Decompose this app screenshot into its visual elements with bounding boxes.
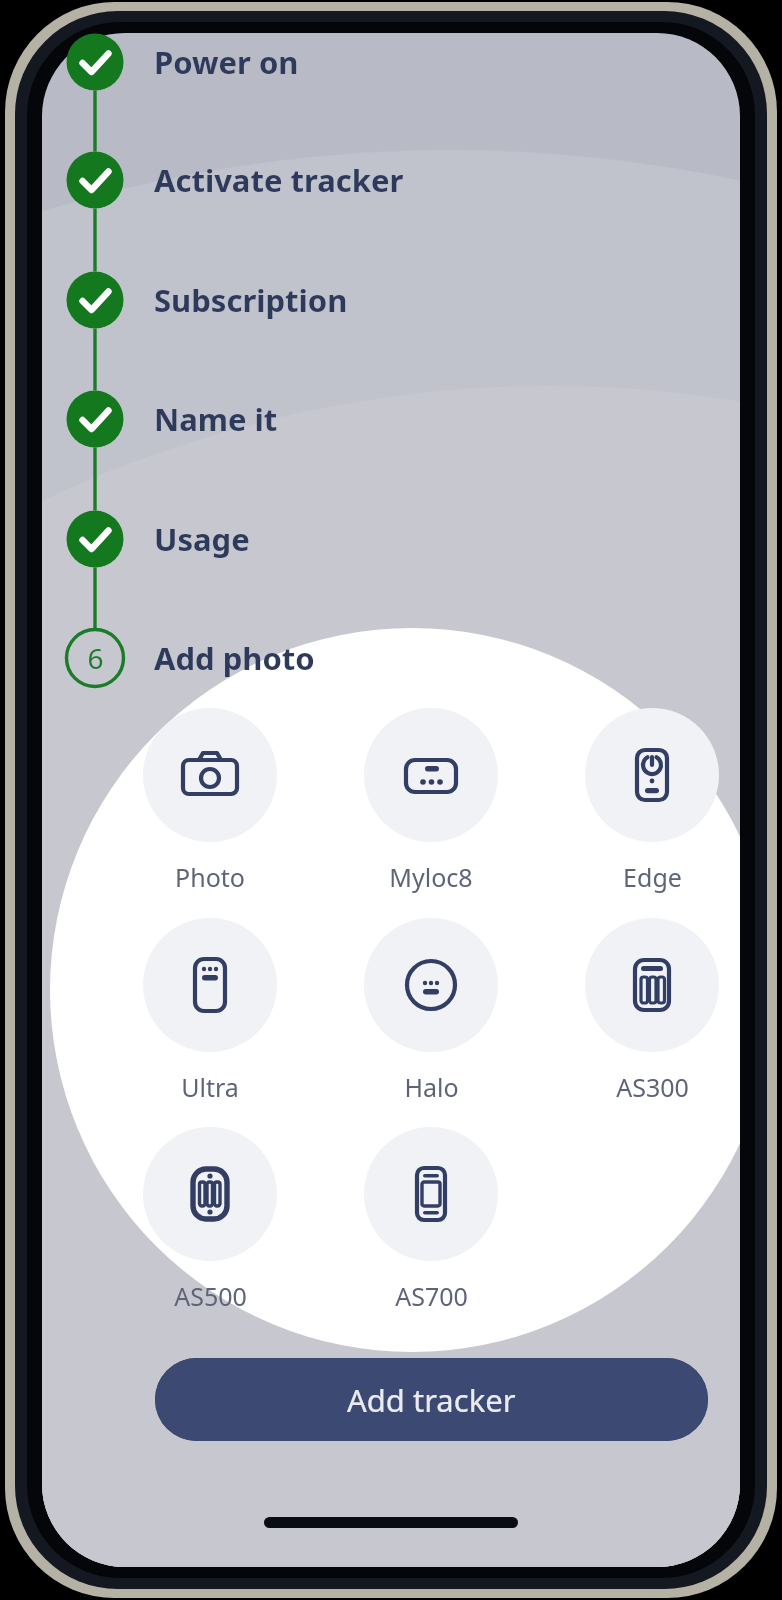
button[interactable]: Edge [578,708,726,898]
button[interactable]: Activate tracker [154,155,584,205]
staticText: AS700 [395,1279,468,1313]
button[interactable]: Ultra [136,918,284,1108]
staticText: Usage [154,518,250,560]
button[interactable]: Name it [154,394,584,444]
button[interactable]: Halo [357,918,505,1108]
staticText: Subscription [154,279,348,321]
staticText: Power on [154,41,299,83]
button[interactable]: Subscription [154,275,584,325]
staticText: Halo [404,1070,459,1104]
button[interactable]: AS300 [578,918,726,1108]
button[interactable]: Myloc8 [357,708,505,898]
staticText: Myloc8 [389,860,473,894]
staticText: Add tracker [347,1379,516,1421]
button[interactable]: AS500 [136,1127,284,1317]
button[interactable]: Photo [136,708,284,898]
staticText: AS500 [174,1279,247,1313]
button[interactable]: Add photo [154,633,584,683]
staticText: Photo [175,860,245,894]
staticText: Edge [623,860,682,894]
staticText: Activate tracker [154,159,404,201]
button[interactable]: Add tracker [155,1358,708,1441]
button[interactable]: AS700 [357,1127,505,1317]
staticText: AS300 [616,1070,689,1104]
staticText: 6 [87,639,104,677]
staticText: Add photo [154,637,315,679]
staticText: Ultra [181,1070,239,1104]
button[interactable]: Usage [154,514,584,564]
button[interactable]: Power on [154,37,584,87]
staticText: Name it [154,398,278,440]
